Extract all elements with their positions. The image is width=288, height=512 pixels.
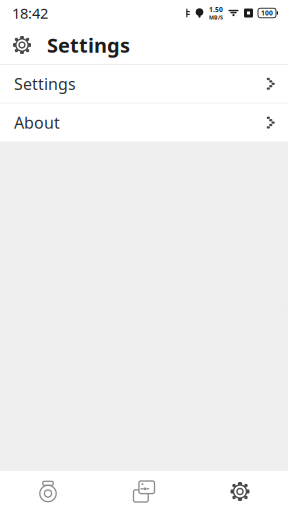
staticText: Settings bbox=[14, 73, 76, 94]
staticText: 100 bbox=[261, 9, 273, 17]
staticText: 18:42 bbox=[12, 3, 48, 23]
button[interactable]: Settings bbox=[192, 471, 288, 512]
button[interactable]: Gallery bbox=[96, 471, 192, 512]
staticText: Settings bbox=[47, 32, 130, 58]
staticText: About bbox=[14, 112, 60, 133]
button[interactable]: Capture bbox=[0, 471, 96, 512]
staticText: 1.50 bbox=[209, 5, 223, 14]
staticText: MB/S bbox=[209, 14, 223, 21]
button[interactable]: Settings bbox=[0, 65, 288, 103]
button[interactable]: About bbox=[0, 104, 288, 142]
